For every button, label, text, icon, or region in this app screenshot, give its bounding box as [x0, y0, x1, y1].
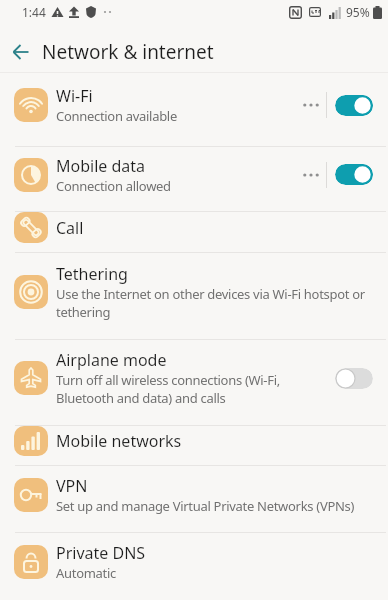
- button[interactable]: Mobile networks: [0, 426, 388, 465]
- button[interactable]: Private DNS: [0, 533, 388, 600]
- staticText: Wi-Fi: [56, 85, 93, 107]
- button[interactable]: Wi-Fi: [0, 73, 388, 146]
- button[interactable]: [335, 164, 373, 185]
- button[interactable]: Mobile data: [0, 147, 388, 211]
- staticText: VPN: [56, 475, 88, 497]
- button[interactable]: [0, 31, 42, 72]
- staticText: 95%: [346, 4, 370, 20]
- button[interactable]: Tethering: [0, 253, 388, 339]
- staticText: Private DNS: [56, 542, 146, 564]
- button[interactable]: Call: [0, 212, 388, 252]
- staticText: Connection available: [56, 107, 177, 125]
- staticText: Set up and manage Virtual Private Networ…: [56, 497, 355, 515]
- staticText: Mobile data: [56, 155, 146, 177]
- staticText: 1:44: [22, 4, 46, 20]
- button[interactable]: VPN: [0, 466, 388, 532]
- staticText: Use the Internet on other devices via Wi…: [56, 285, 365, 303]
- staticText: Mobile networks: [56, 430, 182, 452]
- staticText: Call: [56, 217, 84, 239]
- button[interactable]: [335, 368, 373, 389]
- staticText: Network & internet: [42, 39, 214, 65]
- button[interactable]: Airplane mode: [0, 340, 388, 425]
- staticText: Connection allowed: [56, 177, 171, 195]
- staticText: Bluetooth and data) and calls: [56, 389, 226, 407]
- staticText: tethering: [56, 303, 111, 321]
- staticText: Automatic: [56, 564, 116, 582]
- staticText: Turn off all wireless connections (Wi-Fi…: [56, 371, 280, 389]
- staticText: Tethering: [56, 263, 128, 285]
- button[interactable]: [335, 95, 373, 116]
- staticText: Airplane mode: [56, 349, 167, 371]
